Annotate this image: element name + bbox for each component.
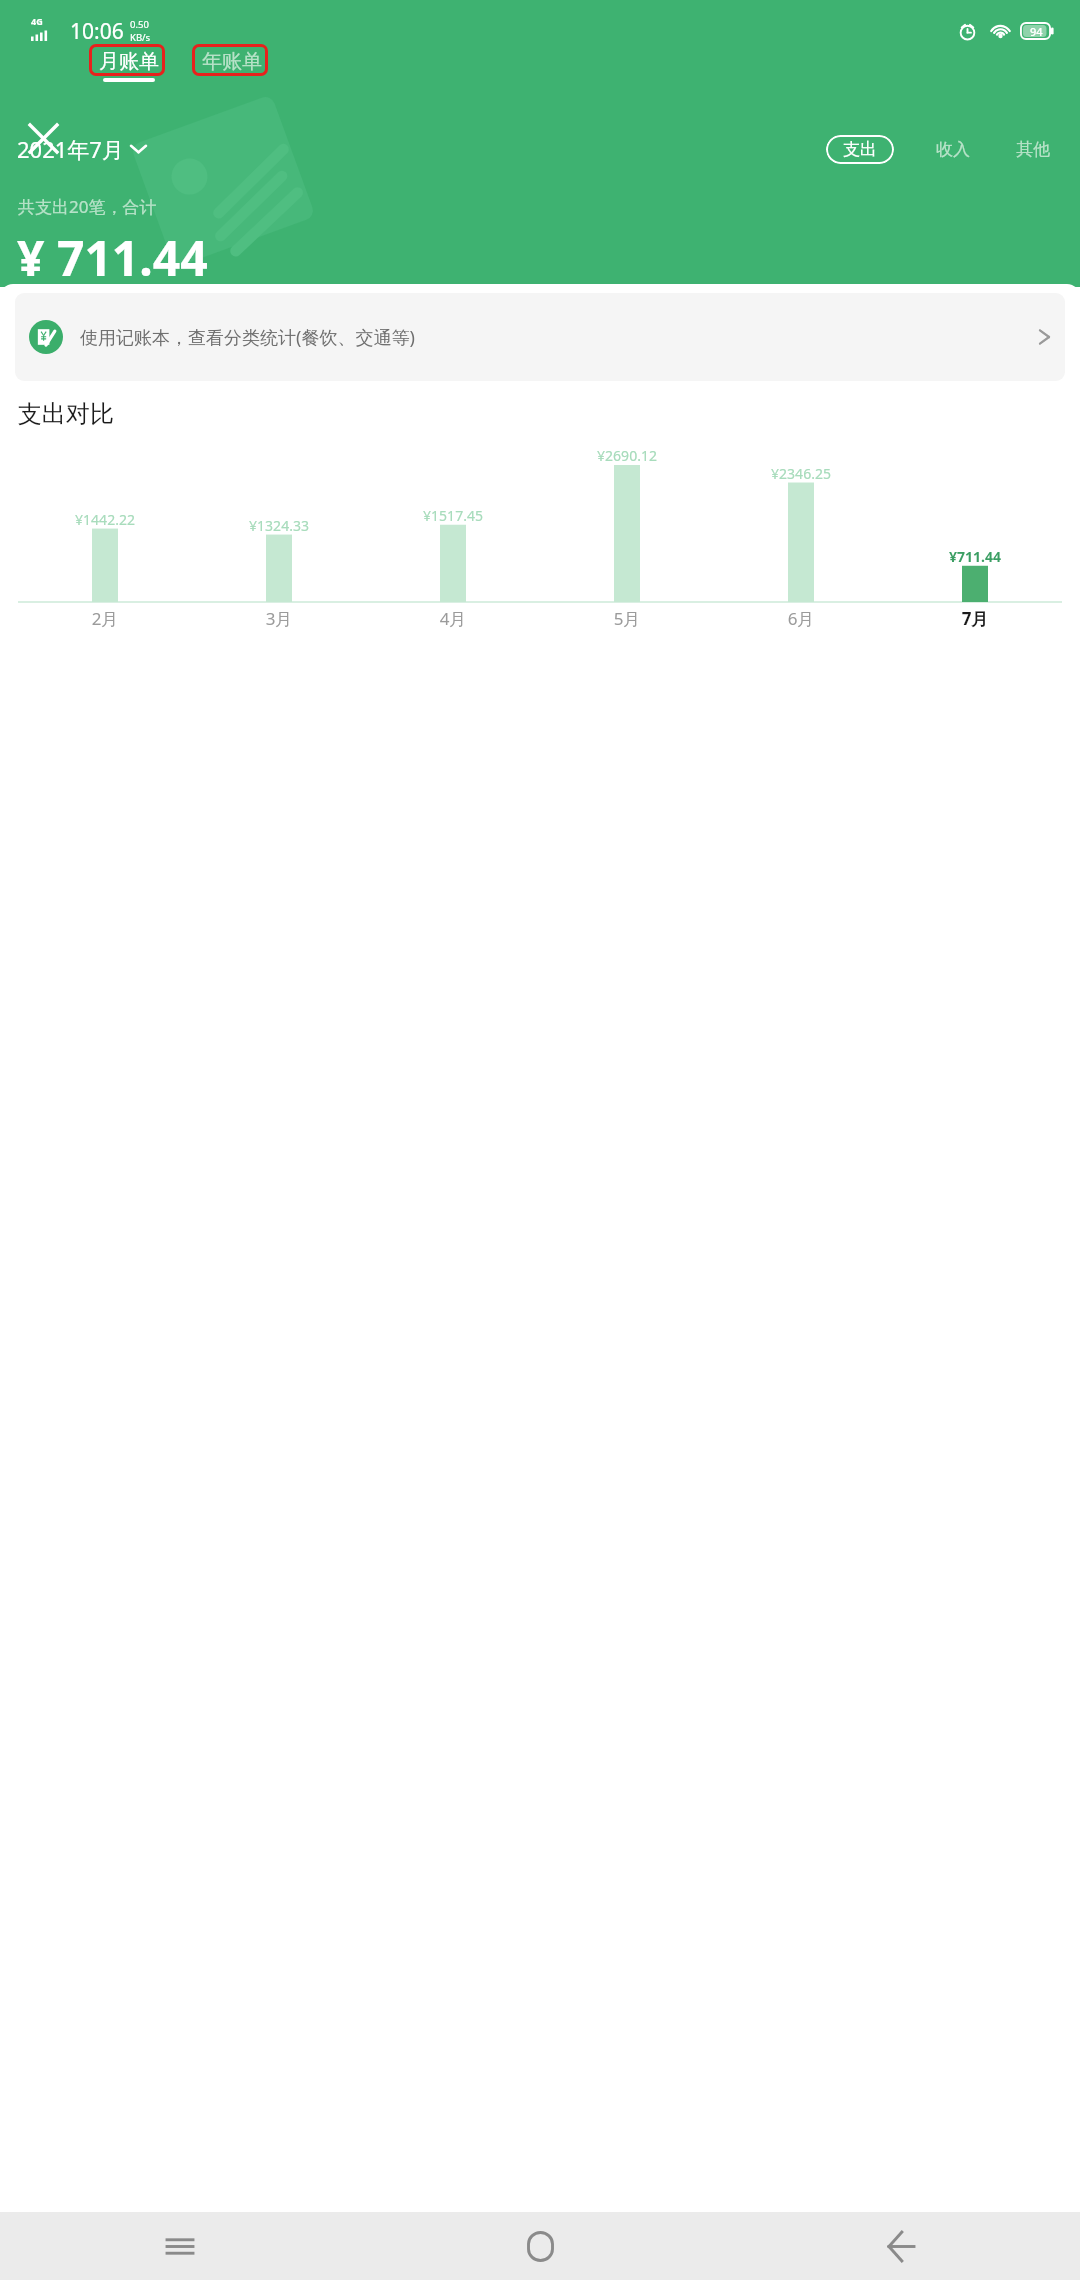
staticText: 6月 <box>714 607 888 630</box>
staticText: ¥1324.33 <box>192 516 366 535</box>
button[interactable]: 其他 <box>1012 133 1054 166</box>
button[interactable]: 2021年7月 <box>17 134 146 164</box>
button[interactable]: 收入 <box>932 133 974 166</box>
button[interactable]: 月账单 <box>93 49 164 85</box>
button[interactable]: Back <box>720 2212 1080 2280</box>
staticText: 4月 <box>366 607 540 630</box>
staticText: 2月 <box>18 607 192 630</box>
staticText: 0.50 <box>130 18 149 31</box>
staticText: 2021年7月 <box>17 134 124 164</box>
staticText: 支出 <box>843 139 877 160</box>
button[interactable]: 支出 <box>826 135 894 164</box>
staticText: 5月 <box>540 607 714 630</box>
staticText: 共支出20笔，合计 <box>18 195 157 218</box>
button[interactable]: 使用记账本，查看分类统计(餐饮、交通等) <box>15 293 1065 381</box>
button[interactable]: Home <box>360 2212 720 2280</box>
staticText: ¥1442.22 <box>18 510 192 529</box>
staticText: 10:06 <box>70 17 124 46</box>
staticText: ¥ 711.44 <box>17 225 208 290</box>
staticText: 94 <box>1030 24 1043 39</box>
staticText: ¥2346.25 <box>714 464 888 483</box>
staticText: 3月 <box>192 607 366 630</box>
staticText: ¥1517.45 <box>366 506 540 525</box>
staticText: 支出对比 <box>18 399 114 429</box>
staticText: 月账单 <box>99 49 159 74</box>
staticText: 使用记账本，查看分类统计(餐饮、交通等) <box>80 325 1030 350</box>
staticText: ¥711.44 <box>888 547 1062 566</box>
staticText: ¥2690.12 <box>540 446 714 465</box>
button[interactable]: 年账单 <box>196 49 267 85</box>
staticText: 年账单 <box>202 49 262 74</box>
staticText: KB/s <box>130 31 151 44</box>
staticText: 7月 <box>888 607 1062 630</box>
staticText: 4G <box>31 15 43 27</box>
staticText: 其他 <box>1016 139 1050 160</box>
button[interactable]: Recent apps <box>0 2212 360 2280</box>
staticText: 收入 <box>936 139 970 160</box>
button[interactable]: Close <box>17 112 69 164</box>
